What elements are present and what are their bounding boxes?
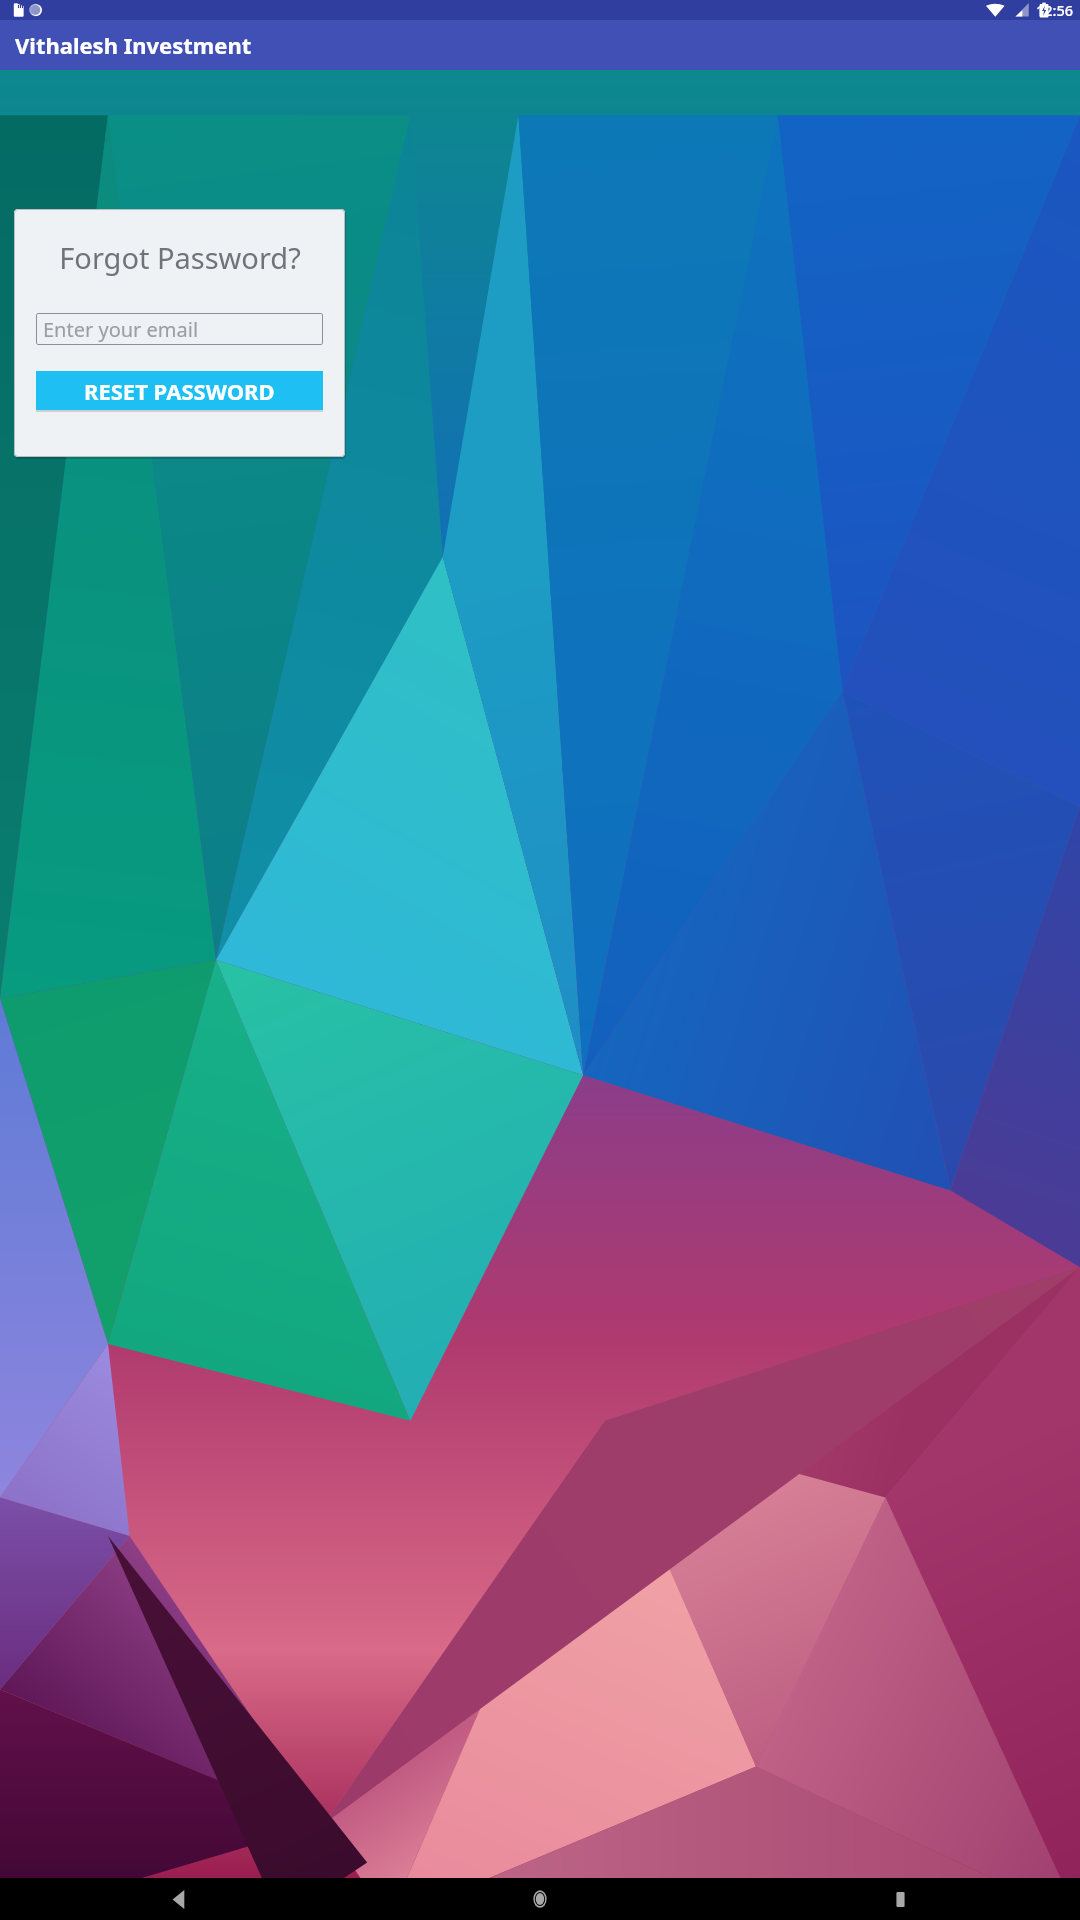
staticText: Forgot Password? — [59, 238, 301, 277]
button[interactable]: Enter your email — [36, 313, 323, 345]
button[interactable]: Back — [0, 1878, 360, 1920]
staticText: RESET PASSWORD — [84, 376, 275, 406]
staticText: Vithalesh Investment — [15, 30, 252, 60]
button[interactable]: Recent apps — [720, 1878, 1080, 1920]
button[interactable]: RESET PASSWORD — [36, 371, 323, 410]
button[interactable]: Home — [360, 1878, 720, 1920]
staticText: 12:56 — [1036, 0, 1074, 20]
staticText: Enter your email — [43, 316, 199, 343]
